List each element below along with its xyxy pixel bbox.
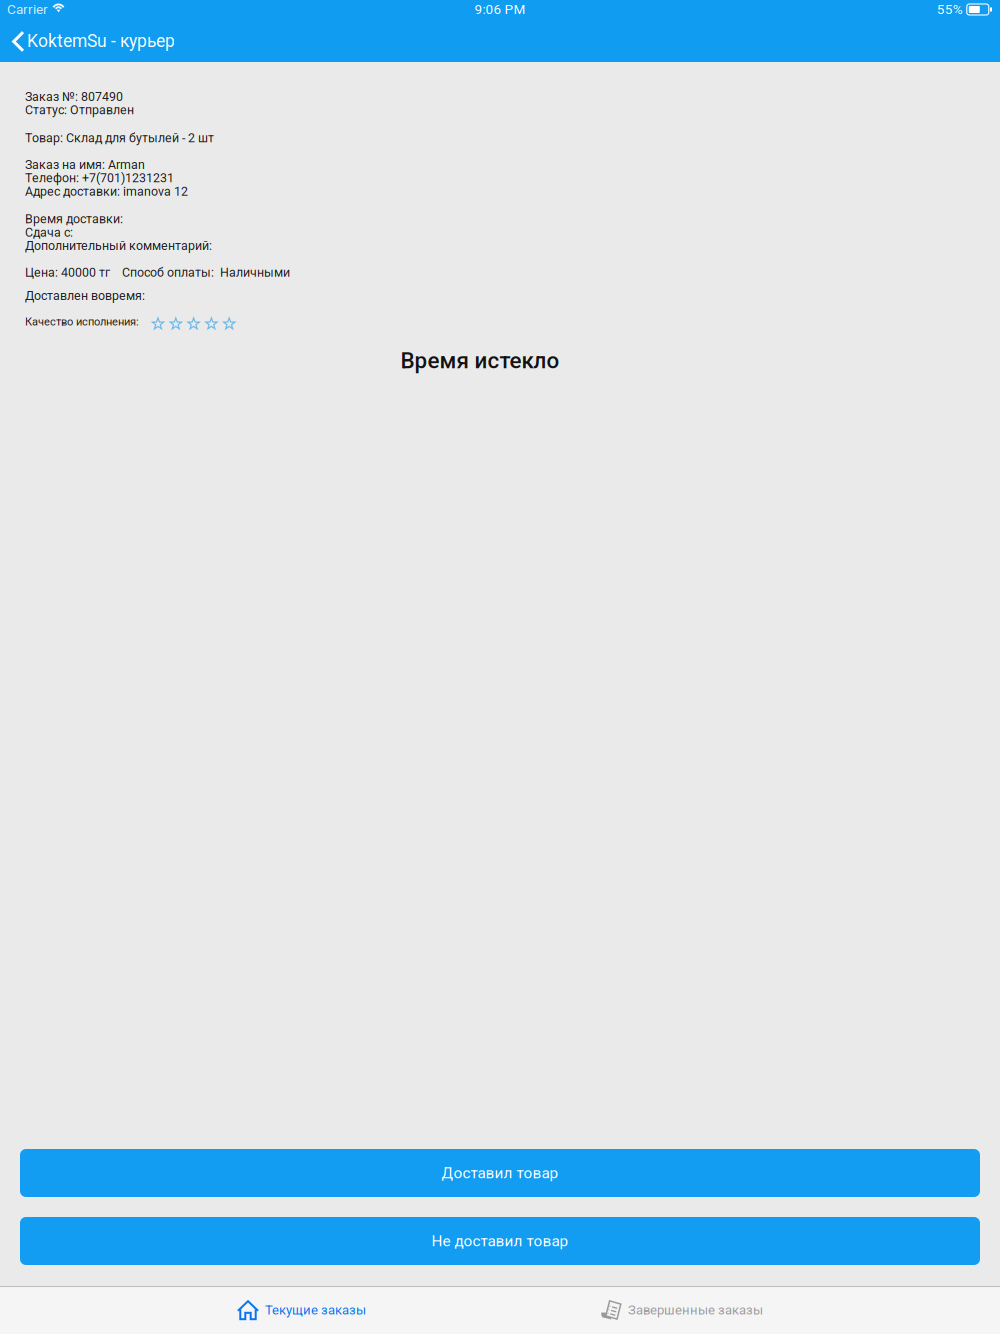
- staticText: Товар: Склад для бутылей - 2 шт: [25, 131, 214, 145]
- button[interactable]: Завершенные заказы: [595, 1286, 769, 1334]
- staticText: 9:06 PM: [474, 1, 525, 17]
- staticText: Заказ №: 807490: [25, 89, 123, 104]
- button[interactable]: Текущие заказы: [231, 1286, 372, 1334]
- staticText: Carrier: [7, 1, 48, 17]
- staticText: Время истекло: [400, 347, 559, 374]
- staticText: Телефон: +7(701)1231231: [25, 171, 174, 185]
- button[interactable]: Оценка 4: [205, 317, 218, 330]
- staticText: Сдача с:: [25, 225, 73, 240]
- staticText: Дополнительный комментарий:: [25, 238, 212, 253]
- staticText: Доставил товар: [441, 1164, 558, 1182]
- button[interactable]: Оценка 2: [169, 317, 182, 330]
- button[interactable]: Не доставил товар: [20, 1217, 980, 1265]
- staticText: Текущие заказы: [265, 1302, 366, 1318]
- button[interactable]: Оценка 1: [151, 317, 164, 330]
- button[interactable]: Доставил товар: [20, 1149, 980, 1197]
- staticText: Время доставки:: [25, 212, 123, 226]
- button[interactable]: KoktemSu - курьер: [0, 26, 187, 57]
- button[interactable]: Оценка 3: [187, 317, 200, 330]
- staticText: Качество исполнения:: [25, 315, 139, 328]
- staticText: 55%: [937, 1, 963, 17]
- staticText: Статус: Отправлен: [25, 103, 134, 117]
- button[interactable]: Оценка 5: [223, 317, 236, 330]
- staticText: Адрес доставки: imanova 12: [25, 184, 188, 199]
- staticText: Не доставил товар: [431, 1232, 568, 1250]
- staticText: KoktemSu - курьер: [27, 31, 175, 51]
- staticText: Заказ на имя: Arman: [25, 157, 145, 172]
- staticText: Завершенные заказы: [628, 1302, 763, 1318]
- staticText: Цена: 40000 тг Способ оплаты: Наличными: [25, 265, 290, 280]
- staticText: Доставлен вовремя:: [25, 289, 145, 303]
